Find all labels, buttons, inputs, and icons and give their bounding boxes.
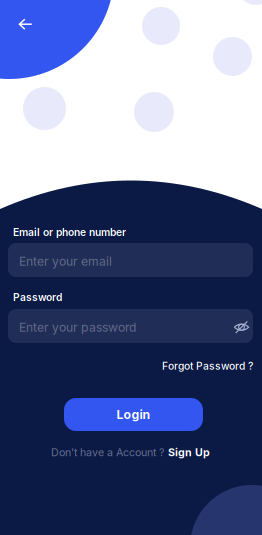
staticText: Sign Up bbox=[168, 446, 210, 459]
button[interactable]: Sign Up bbox=[168, 446, 210, 459]
staticText: Email or phone number bbox=[13, 226, 126, 238]
staticText: Password bbox=[13, 291, 62, 303]
staticText: Forgot Password ? bbox=[162, 360, 253, 372]
staticText: Enter your password bbox=[19, 320, 136, 335]
button[interactable]: Forgot Password ? bbox=[8, 358, 253, 374]
button[interactable]: Show password bbox=[227, 313, 255, 341]
staticText: Login bbox=[116, 407, 150, 422]
button[interactable]: Back bbox=[10, 8, 42, 40]
staticText: Enter your email bbox=[19, 254, 112, 269]
button[interactable]: Login bbox=[64, 398, 203, 431]
staticText: Don't have a Account ? bbox=[51, 446, 164, 459]
